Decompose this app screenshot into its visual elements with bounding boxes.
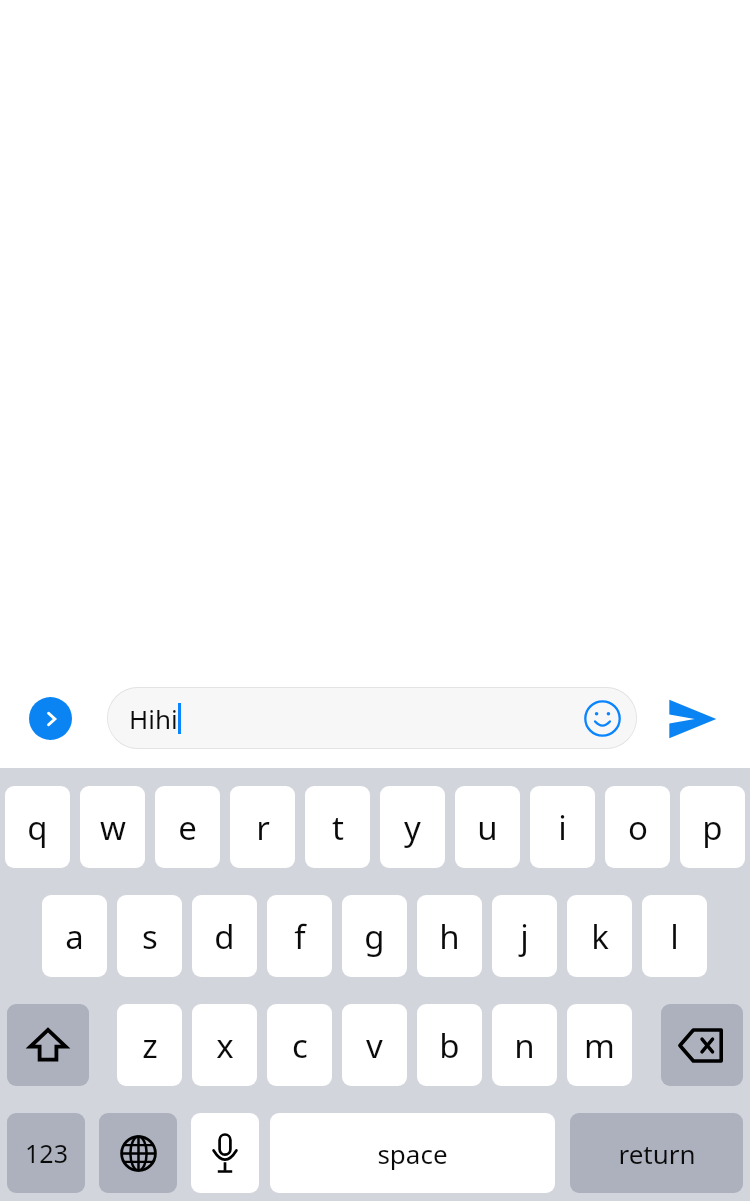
button[interactable]: i [530, 786, 595, 868]
button[interactable]: x [192, 1004, 257, 1086]
staticText: g [364, 914, 385, 959]
button[interactable]: b [417, 1004, 482, 1086]
staticText: h [439, 914, 460, 959]
button[interactable]: Send [661, 694, 723, 744]
staticText: k [591, 914, 609, 959]
button[interactable]: u [455, 786, 520, 868]
staticText: i [558, 805, 567, 850]
staticText: m [584, 1023, 615, 1068]
button[interactable]: v [342, 1004, 407, 1086]
staticText: x [216, 1023, 234, 1068]
button[interactable]: z [117, 1004, 182, 1086]
staticText: y [404, 805, 421, 850]
staticText: d [214, 914, 235, 959]
button[interactable]: r [230, 786, 295, 868]
staticText: o [628, 805, 648, 850]
staticText: 123 [25, 1136, 68, 1170]
button[interactable]: d [192, 895, 257, 977]
staticText: space [377, 1136, 448, 1171]
staticText: z [142, 1023, 158, 1068]
staticText: a [65, 914, 84, 959]
button[interactable]: return [570, 1113, 743, 1193]
staticText: j [520, 914, 529, 959]
staticText: u [477, 805, 498, 850]
button[interactable]: a [42, 895, 107, 977]
staticText: t [332, 805, 344, 850]
button[interactable]: n [492, 1004, 557, 1086]
button[interactable]: l [642, 895, 707, 977]
button[interactable]: j [492, 895, 557, 977]
button[interactable]: c [267, 1004, 332, 1086]
staticText: r [256, 805, 270, 850]
button[interactable]: More options [29, 697, 72, 740]
button[interactable]: Hihi [107, 687, 637, 749]
button[interactable]: m [567, 1004, 632, 1086]
button[interactable]: 123 [7, 1113, 85, 1193]
button[interactable]: t [305, 786, 370, 868]
button[interactable]: w [80, 786, 145, 868]
button[interactable]: y [380, 786, 445, 868]
staticText: c [292, 1023, 308, 1068]
staticText: f [294, 914, 306, 959]
staticText: return [618, 1136, 696, 1171]
button[interactable]: Voice input [191, 1113, 259, 1193]
staticText: l [670, 914, 679, 959]
staticText: w [100, 805, 126, 850]
staticText: p [702, 805, 723, 850]
button[interactable]: Backspace [661, 1004, 743, 1086]
button[interactable]: q [5, 786, 70, 868]
button[interactable]: e [155, 786, 220, 868]
button[interactable]: p [680, 786, 745, 868]
button[interactable]: space [270, 1113, 555, 1193]
button[interactable]: Emoji [581, 697, 623, 739]
button[interactable]: Switch keyboard [99, 1113, 177, 1193]
button[interactable]: Shift [7, 1004, 89, 1086]
staticText: e [178, 805, 197, 850]
staticText: v [366, 1023, 383, 1068]
button[interactable]: g [342, 895, 407, 977]
staticText: q [27, 805, 48, 850]
button[interactable]: f [267, 895, 332, 977]
button[interactable]: s [117, 895, 182, 977]
button[interactable]: k [567, 895, 632, 977]
staticText: s [142, 914, 158, 959]
staticText: n [514, 1023, 535, 1068]
button[interactable]: o [605, 786, 670, 868]
staticText: b [439, 1023, 460, 1068]
button[interactable]: h [417, 895, 482, 977]
staticText: Hihi [129, 701, 178, 736]
